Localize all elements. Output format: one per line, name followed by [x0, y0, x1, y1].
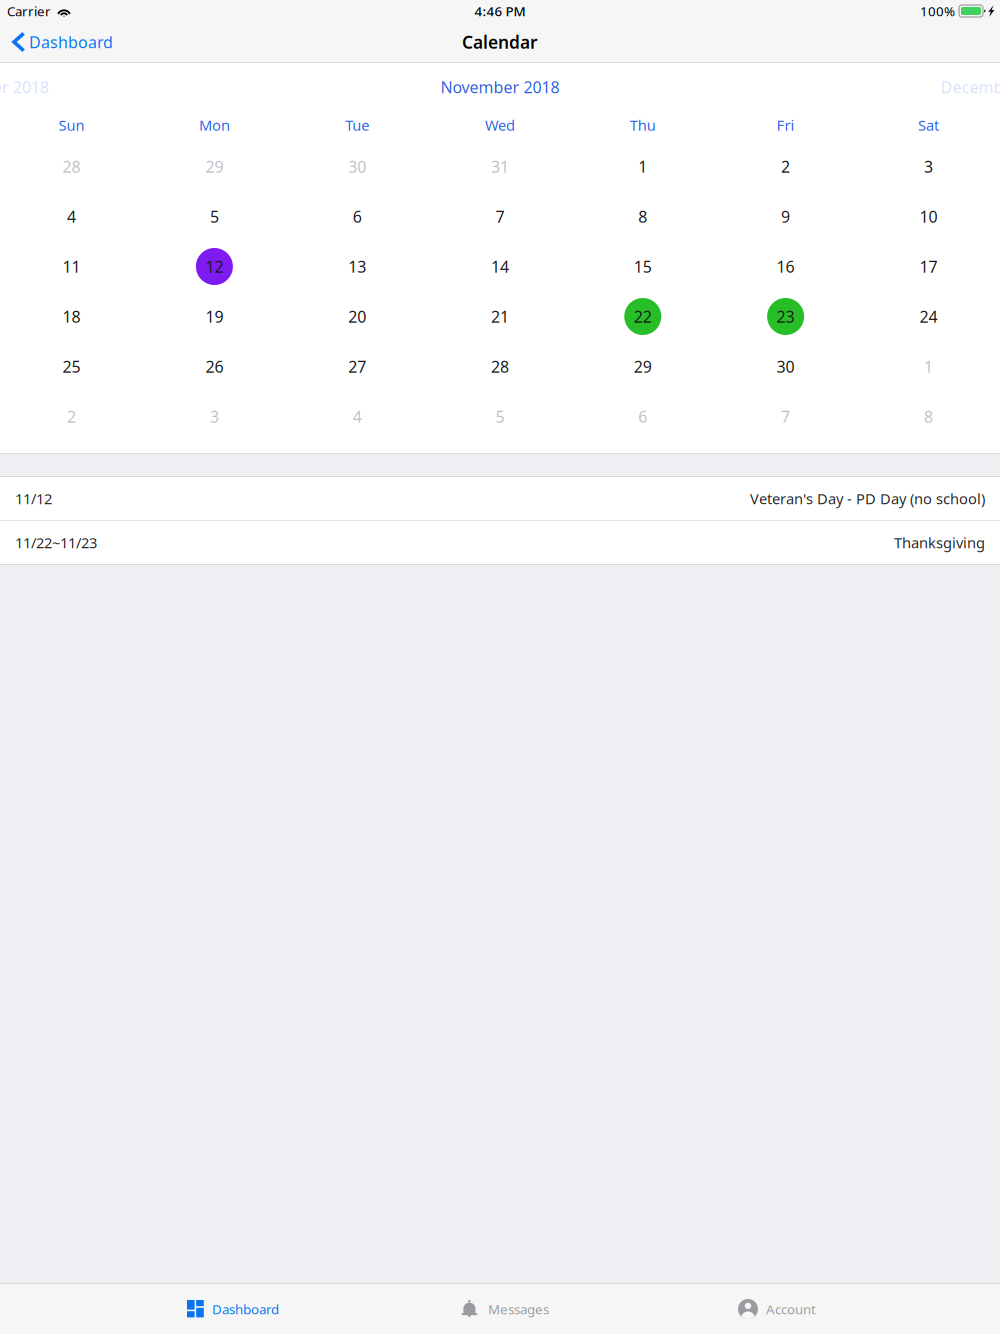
staticText: 30	[348, 156, 366, 177]
staticText: 12	[205, 256, 223, 277]
staticText: 6	[353, 206, 362, 227]
button[interactable]: 6	[571, 391, 714, 441]
button[interactable]: 10	[857, 191, 1000, 241]
staticText: Veteran's Day - PD Day (no school)	[750, 489, 985, 508]
staticText: 4:46 PM	[474, 2, 525, 20]
button[interactable]: 3	[857, 141, 1000, 191]
button[interactable]: 25	[0, 341, 143, 391]
button[interactable]: Messages	[369, 1284, 641, 1333]
button[interactable]: Account	[641, 1284, 913, 1333]
staticText: Tue	[345, 115, 369, 135]
button[interactable]: 9	[714, 191, 857, 241]
staticText: 4	[353, 406, 362, 427]
staticText: 22	[634, 306, 652, 327]
button[interactable]: 30	[286, 141, 429, 191]
staticText: 10	[919, 206, 937, 227]
button[interactable]: 7	[714, 391, 857, 441]
staticText: 16	[777, 256, 795, 277]
button[interactable]: Dashboard	[0, 22, 121, 62]
staticText: Fri	[777, 115, 795, 135]
staticText: 29	[205, 156, 223, 177]
staticText: Dashboard	[29, 31, 113, 53]
button[interactable]: 3	[143, 391, 286, 441]
button[interactable]: 1	[571, 141, 714, 191]
button[interactable]: 14	[429, 241, 571, 291]
staticText: Calendar	[462, 30, 538, 53]
staticText: October 2018	[0, 76, 49, 98]
button[interactable]: 29	[571, 341, 714, 391]
button[interactable]: 5	[143, 191, 286, 241]
staticText: 20	[348, 306, 366, 327]
staticText: Mon	[199, 115, 230, 135]
staticText: 23	[777, 306, 795, 327]
button[interactable]: 24	[857, 291, 1000, 341]
staticText: 15	[634, 256, 652, 277]
staticText: 25	[63, 356, 81, 377]
button[interactable]: 26	[143, 341, 286, 391]
staticText: 4	[67, 206, 76, 227]
staticText: December 2018	[940, 76, 1000, 98]
button[interactable]: 28	[429, 341, 571, 391]
button[interactable]: 22	[571, 291, 714, 341]
staticText: 8	[924, 406, 933, 427]
staticText: 3	[210, 406, 219, 427]
button[interactable]: 11/22~11/23	[0, 521, 1000, 564]
staticText: 24	[919, 306, 937, 327]
staticText: Thu	[630, 115, 656, 135]
button[interactable]: 2	[0, 391, 143, 441]
button[interactable]: Dashboard	[97, 1284, 369, 1333]
button[interactable]: 6	[286, 191, 429, 241]
button[interactable]: 17	[857, 241, 1000, 291]
button[interactable]: 8	[857, 391, 1000, 441]
staticText: Carrier	[7, 2, 51, 20]
staticText: 3	[924, 156, 933, 177]
staticText: 31	[491, 156, 509, 177]
button[interactable]: 30	[714, 341, 857, 391]
button[interactable]: 23	[714, 291, 857, 341]
button[interactable]: 4	[0, 191, 143, 241]
staticText: Account	[766, 1300, 816, 1318]
staticText: 9	[781, 206, 790, 227]
staticText: 7	[495, 206, 504, 227]
button[interactable]: 20	[286, 291, 429, 341]
button[interactable]: 11/12	[0, 477, 1000, 520]
button[interactable]: 18	[0, 291, 143, 341]
staticText: 17	[919, 256, 937, 277]
staticText: 100%	[920, 2, 955, 20]
button[interactable]: 27	[286, 341, 429, 391]
staticText: 7	[781, 406, 790, 427]
staticText: 8	[638, 206, 647, 227]
staticText: 1	[924, 356, 933, 377]
staticText: 29	[634, 356, 652, 377]
staticText: 5	[210, 206, 219, 227]
staticText: 27	[348, 356, 366, 377]
button[interactable]: 19	[143, 291, 286, 341]
button[interactable]: 16	[714, 241, 857, 291]
button[interactable]: 4	[286, 391, 429, 441]
button[interactable]: 2	[714, 141, 857, 191]
button[interactable]: 15	[571, 241, 714, 291]
staticText: 30	[777, 356, 795, 377]
button[interactable]: 29	[143, 141, 286, 191]
button[interactable]: 11	[0, 241, 143, 291]
button[interactable]: 8	[571, 191, 714, 241]
staticText: 5	[495, 406, 504, 427]
button[interactable]: 12	[143, 241, 286, 291]
staticText: Wed	[485, 115, 515, 135]
staticText: 14	[491, 256, 509, 277]
button[interactable]: 21	[429, 291, 571, 341]
staticText: 18	[63, 306, 81, 327]
staticText: 2	[67, 406, 76, 427]
button[interactable]: 31	[429, 141, 571, 191]
staticText: 11/22~11/23	[15, 533, 97, 552]
staticText: 1	[638, 156, 647, 177]
staticText: Messages	[488, 1300, 549, 1318]
button[interactable]: 7	[429, 191, 571, 241]
staticText: 13	[348, 256, 366, 277]
button[interactable]: 28	[0, 141, 143, 191]
staticText: 11	[63, 256, 81, 277]
button[interactable]: 5	[429, 391, 571, 441]
button[interactable]: 13	[286, 241, 429, 291]
staticText: Sun	[59, 115, 85, 135]
